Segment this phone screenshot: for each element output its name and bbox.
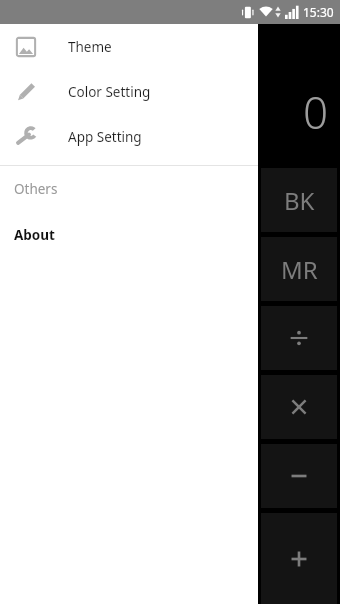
- staticText: Color Setting: [68, 83, 151, 101]
- staticText: 15:30: [303, 4, 334, 20]
- button[interactable]: Color Setting: [0, 69, 258, 114]
- button[interactable]: App Setting: [0, 114, 258, 159]
- staticText: App Setting: [68, 128, 142, 146]
- button[interactable]: About: [0, 222, 258, 248]
- button[interactable]: Divide: [261, 306, 337, 370]
- staticText: About: [14, 226, 55, 244]
- staticText: Others: [14, 180, 58, 198]
- button[interactable]: Multiply: [261, 375, 337, 439]
- staticText: Theme: [68, 38, 112, 56]
- button[interactable]: Minus: [261, 444, 337, 508]
- staticText: BK: [284, 184, 315, 217]
- button[interactable]: MR: [261, 237, 337, 301]
- button[interactable]: BK: [261, 168, 337, 232]
- staticText: 0: [302, 82, 328, 142]
- button[interactable]: Plus: [261, 513, 337, 604]
- staticText: MR: [281, 253, 318, 286]
- button[interactable]: Theme: [0, 24, 258, 69]
